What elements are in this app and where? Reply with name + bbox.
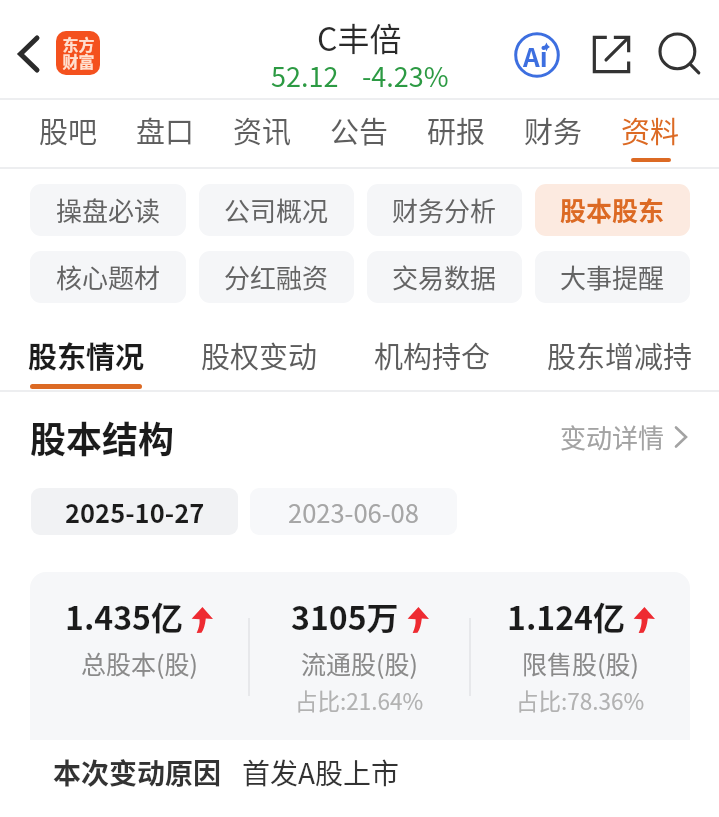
staticText: 分红融资 bbox=[224, 258, 329, 296]
button[interactable]: 机构持仓 bbox=[363, 315, 502, 390]
staticText: 资讯 bbox=[233, 109, 292, 151]
staticText: 股权变动 bbox=[201, 334, 318, 376]
staticText: -4.23% bbox=[362, 56, 449, 95]
button[interactable]: 股东增减持 bbox=[536, 315, 703, 390]
button[interactable]: 变动详情 bbox=[552, 410, 696, 464]
staticText: 股本结构 bbox=[30, 411, 175, 463]
staticText: 盘口 bbox=[136, 109, 195, 151]
staticText: 股东增减持 bbox=[547, 334, 693, 376]
staticText: 股吧 bbox=[39, 109, 98, 151]
button[interactable]: 股吧 bbox=[20, 99, 117, 167]
button[interactable]: 股东情况 bbox=[16, 315, 156, 390]
staticText: 公司概况 bbox=[224, 191, 329, 229]
button[interactable]: 资料 bbox=[602, 99, 699, 167]
staticText: 财务分析 bbox=[392, 191, 497, 229]
staticText: C丰倍 bbox=[317, 14, 402, 60]
staticText: 机构持仓 bbox=[374, 334, 491, 376]
staticText: 交易数据 bbox=[392, 258, 497, 296]
button[interactable]: 盘口 bbox=[117, 99, 214, 167]
button[interactable]: 交易数据 bbox=[367, 251, 522, 303]
button[interactable]: 2025-10-27 bbox=[31, 488, 238, 535]
staticText: 研报 bbox=[427, 109, 486, 151]
button[interactable]: 2023-06-08 bbox=[250, 488, 457, 535]
staticText: 3105万 bbox=[291, 593, 399, 639]
staticText: 本次变动原因 bbox=[53, 752, 222, 793]
button[interactable]: Share bbox=[583, 26, 639, 82]
staticText: 股东情况 bbox=[28, 334, 145, 376]
staticText: 总股本(股) bbox=[81, 645, 198, 681]
button[interactable]: 研报 bbox=[408, 99, 505, 167]
staticText: 2025-10-27 bbox=[65, 493, 205, 530]
staticText: 占比:21.64% bbox=[295, 684, 424, 717]
button[interactable]: 财务 bbox=[505, 99, 602, 167]
staticText: 股本股东 bbox=[560, 191, 665, 229]
button[interactable]: 资讯 bbox=[214, 99, 311, 167]
staticText: 占比:78.36% bbox=[516, 684, 645, 717]
button[interactable]: 公司概况 bbox=[199, 184, 354, 236]
button[interactable]: 股本股东 bbox=[535, 184, 690, 236]
button[interactable]: East Money logo bbox=[56, 31, 100, 75]
staticText: 流通股(股) bbox=[301, 645, 418, 681]
button[interactable]: 财务分析 bbox=[367, 184, 522, 236]
staticText: Ai bbox=[523, 37, 548, 75]
button[interactable]: 分红融资 bbox=[199, 251, 354, 303]
staticText: 52.12 bbox=[271, 56, 339, 95]
staticText: 2023-06-08 bbox=[288, 493, 419, 530]
staticText: 1.435亿 bbox=[65, 593, 183, 639]
staticText: 财务 bbox=[524, 109, 583, 151]
staticText: 东方 财富 bbox=[62, 32, 95, 73]
button[interactable]: Search bbox=[652, 26, 708, 82]
button[interactable]: 大事提醒 bbox=[535, 251, 690, 303]
staticText: 操盘必读 bbox=[56, 191, 161, 229]
staticText: 资料 bbox=[621, 109, 680, 151]
staticText: 大事提醒 bbox=[560, 258, 665, 296]
staticText: 核心题材 bbox=[56, 258, 161, 296]
button[interactable]: 公告 bbox=[311, 99, 408, 167]
button[interactable]: 操盘必读 bbox=[30, 184, 186, 236]
staticText: 1.124亿 bbox=[507, 593, 625, 639]
staticText: 变动详情 bbox=[560, 418, 665, 456]
button[interactable]: Back bbox=[0, 8, 60, 100]
button[interactable]: AI assistant bbox=[509, 27, 565, 83]
staticText: 限售股(股) bbox=[522, 645, 639, 681]
staticText: 公告 bbox=[330, 109, 389, 151]
staticText: 首发A股上市 bbox=[242, 752, 400, 793]
button[interactable]: 股权变动 bbox=[190, 315, 329, 390]
button[interactable]: 核心题材 bbox=[30, 251, 186, 303]
